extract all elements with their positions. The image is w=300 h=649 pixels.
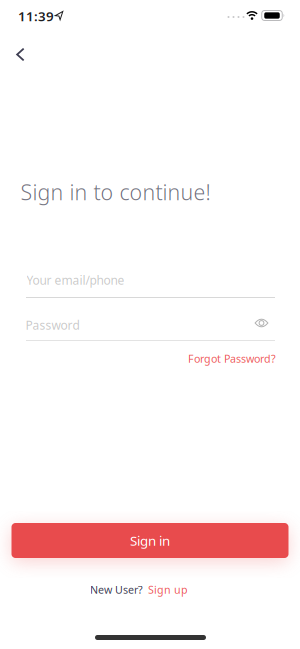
staticText: Forgot Password? [188, 351, 276, 366]
button[interactable]: Back [6, 40, 34, 68]
staticText: 11:39 [18, 7, 54, 25]
staticText: New User? [90, 582, 143, 597]
staticText: Password [25, 317, 79, 333]
staticText: Sign in [130, 532, 170, 549]
staticText: Sign in to continue! [20, 178, 210, 206]
button[interactable]: Show password [251, 315, 271, 331]
button[interactable]: Sign up [148, 582, 188, 597]
staticText: Sign up [148, 582, 188, 597]
staticText: Your email/phone [26, 272, 124, 288]
button[interactable]: Sign in [11, 523, 288, 558]
button[interactable]: Forgot Password? [188, 351, 276, 366]
